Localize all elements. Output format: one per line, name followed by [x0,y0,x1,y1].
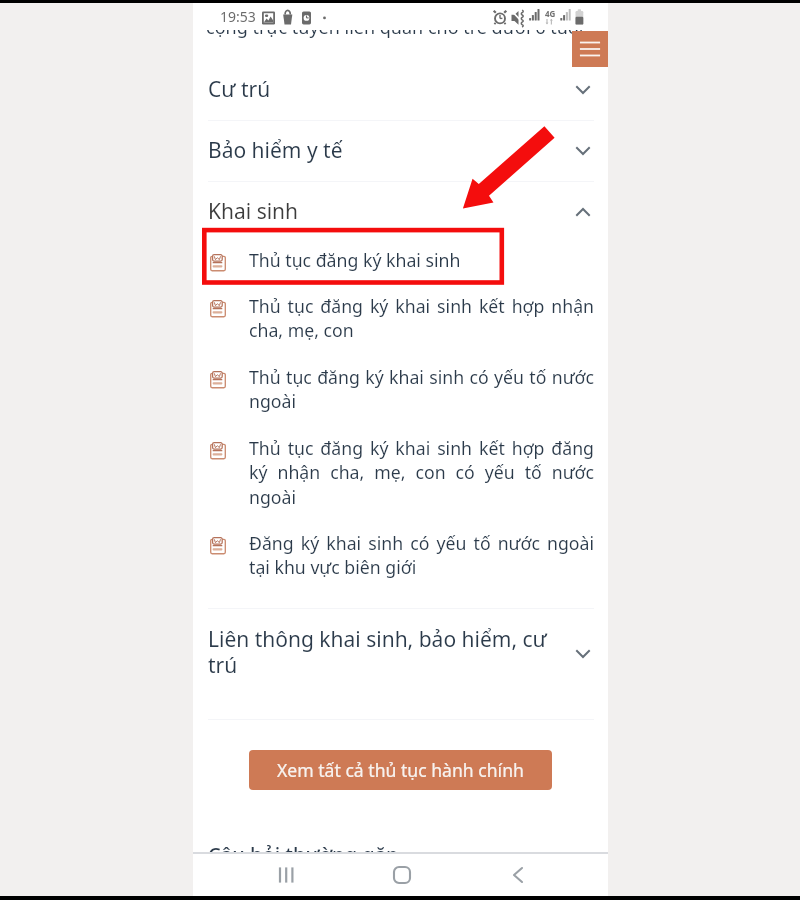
staticText: Liên thông khai sinh, bảo hiểm, cư trú [208,625,556,680]
button[interactable]: Cư trú [193,64,608,125]
staticText: Thủ tục đăng ký khai sinh có yếu tố nước… [249,365,594,413]
staticText: Thủ tục đăng ký khai sinh [249,248,594,272]
button[interactable] [193,432,608,472]
staticText: Câu hỏi thường gặp [208,841,399,868]
staticText: Bảo hiểm y tế [208,136,343,165]
button[interactable]: Home [378,851,426,899]
button[interactable]: Bảo hiểm y tế [193,125,608,186]
button[interactable] [193,290,608,330]
staticText: Khai sinh [208,197,299,226]
staticText: Đăng ký khai sinh có yếu tố nước ngoài t… [249,531,594,579]
button[interactable]: Back [494,851,542,899]
staticText: cộng trực tuyến liên quan cho trẻ dưới 6… [206,15,584,40]
button[interactable]: Khai sinh [193,186,608,247]
button[interactable] [193,244,608,284]
staticText: 4G [545,8,556,19]
button[interactable]: Recents [262,851,310,899]
staticText: Xem tất cả thủ tục hành chính [277,758,524,782]
staticText: Thủ tục đăng ký khai sinh kết hợp nhận c… [249,294,594,342]
staticText: Thủ tục đăng ký khai sinh kết hợp đăng k… [249,436,594,509]
button[interactable]: Menu [572,31,608,67]
staticText: Cư trú [208,75,271,104]
button[interactable]: Xem tất cả thủ tục hành chính [249,750,552,790]
staticText: 19:53 [220,7,256,26]
button[interactable]: Liên thông khai sinh, bảo hiểm, cư trú [193,609,608,719]
button[interactable] [193,361,608,401]
button[interactable] [193,527,608,567]
